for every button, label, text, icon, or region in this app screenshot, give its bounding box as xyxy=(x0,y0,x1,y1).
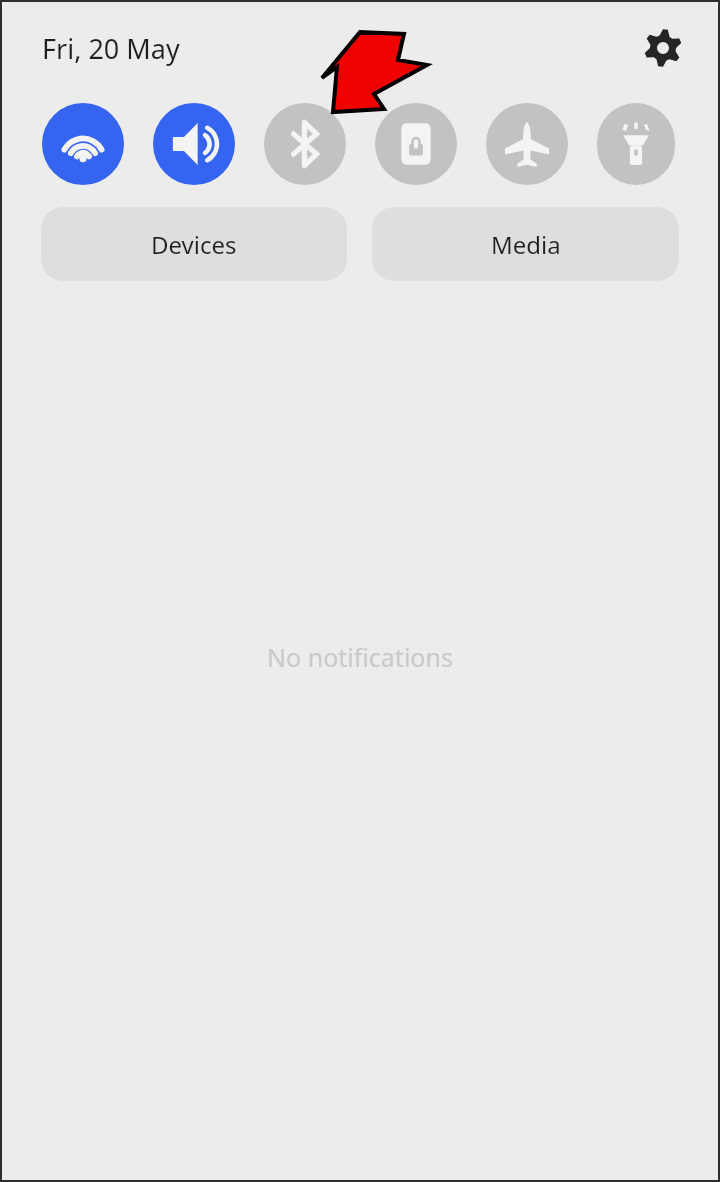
button[interactable]: Sound xyxy=(153,103,235,185)
staticText: Media xyxy=(491,228,561,261)
button[interactable]: SIM lock xyxy=(375,103,457,185)
button[interactable]: Settings xyxy=(640,25,686,71)
staticText: No notifications xyxy=(267,640,453,674)
button[interactable]: Devices xyxy=(41,207,347,281)
button[interactable]: Airplane mode xyxy=(486,103,568,185)
button[interactable]: Media xyxy=(372,207,679,281)
staticText: Fri, 20 May xyxy=(42,30,180,67)
button[interactable]: Wi-Fi xyxy=(42,103,124,185)
button[interactable]: Bluetooth xyxy=(264,103,346,185)
button[interactable]: Flashlight xyxy=(597,103,675,185)
staticText: Devices xyxy=(151,228,237,261)
